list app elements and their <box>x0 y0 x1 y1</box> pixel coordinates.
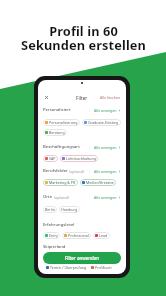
button[interactable]: Alle anzeigen <box>94 145 121 150</box>
staticText: SAP <box>49 156 56 161</box>
button[interactable]: Personalisierung <box>43 119 80 126</box>
button[interactable]: Filter anwenden <box>43 252 121 264</box>
button[interactable]: Medien/Kreative <box>80 179 116 186</box>
staticText: Personalisierung <box>49 120 78 125</box>
button[interactable]: Alle löschen <box>100 95 121 100</box>
staticText: Graduate-Einstieg <box>88 120 119 125</box>
button[interactable]: Entry <box>43 232 60 239</box>
button[interactable]: Berlin <box>43 206 57 213</box>
staticText: Personalisiert <box>43 107 71 113</box>
staticText: Professional <box>68 233 89 238</box>
staticText: Alle anzeigen <box>94 195 117 200</box>
staticText: (optional) <box>69 169 85 174</box>
staticText: Erfahrungslevel <box>43 222 75 228</box>
staticText: Hamburg <box>61 207 78 212</box>
staticText: Alle anzeigen <box>94 145 117 150</box>
staticText: Beratung <box>49 130 65 135</box>
staticText: Berlin <box>45 207 55 212</box>
staticText: (optional) <box>54 195 70 200</box>
staticText: Skipierland <box>43 244 66 250</box>
button[interactable]: Alle anzeigen <box>94 195 121 200</box>
staticText: Berufsfelder <box>43 168 68 174</box>
staticText: Lohnbuchhaltung <box>66 156 96 161</box>
staticText: Lead <box>99 233 108 238</box>
staticText: Entry <box>49 233 58 238</box>
button[interactable]: SAP <box>43 155 58 162</box>
staticText: Filter anwenden <box>65 255 99 261</box>
button[interactable]: Alle anzeigen <box>94 169 121 174</box>
staticText: Profilbuch <box>95 265 112 270</box>
button[interactable]: Professional <box>62 232 91 239</box>
button[interactable]: Hamburg <box>59 206 80 213</box>
staticText: Alle anzeigen <box>94 108 117 113</box>
staticText: Beschäftigungsart <box>43 144 80 150</box>
staticText: Medien/Kreative <box>86 180 114 185</box>
button[interactable]: Lohnbuchhaltung <box>60 155 98 162</box>
button[interactable]: Marketing & PR <box>43 179 78 186</box>
staticText: Marketing & PR <box>49 180 76 185</box>
staticText: Alle anzeigen <box>94 169 117 174</box>
staticText: Filter <box>76 95 88 101</box>
staticText: Orte <box>43 194 53 200</box>
button[interactable]: Alle anzeigen <box>94 108 121 113</box>
button[interactable]: Schließen <box>43 94 50 101</box>
staticText: Profil in 60 Sekunden erstellen <box>21 22 146 54</box>
button[interactable]: Lead <box>93 232 110 239</box>
button[interactable]: Graduate-Einstieg <box>82 119 121 126</box>
button[interactable]: Beratung <box>43 129 67 136</box>
staticText: Termin / Überprüfung <box>50 265 87 270</box>
